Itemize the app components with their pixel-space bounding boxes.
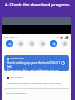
staticText: Notifications appear here when apps send… <box>7 81 61 84</box>
button[interactable]: Bluetooth <box>17 40 24 47</box>
button[interactable]: Download progress <box>60 60 66 66</box>
button[interactable]: Android Setup <box>4 55 69 71</box>
staticText: Now Playing <box>10 76 23 79</box>
button[interactable]: Do not disturb <box>28 40 35 47</box>
staticText: Mon, Sep 13 <box>4 36 17 39</box>
button[interactable]: Wi-Fi <box>6 40 13 47</box>
staticText: Copy your data, set wallpaper, set up... <box>7 69 61 71</box>
staticText: Silent notifications <box>6 91 27 94</box>
staticText: Android Setup <box>10 57 25 60</box>
button[interactable]: Flashlight <box>39 40 46 47</box>
button[interactable]: Now Playing <box>4 74 69 84</box>
staticText: 4. Check the download progress. <box>5 2 71 8</box>
button[interactable]: Auto-rotate <box>50 40 57 47</box>
button[interactable]: Battery saver <box>61 40 68 47</box>
staticText: Finish setting up your Android 502.9 MB … <box>7 61 67 69</box>
